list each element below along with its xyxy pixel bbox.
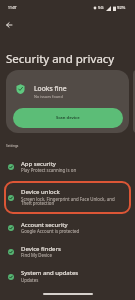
staticText: System and updates (21, 269, 79, 277)
staticText: Account security (21, 221, 68, 229)
button[interactable] (4, 181, 131, 214)
staticText: Find My Device (21, 252, 52, 258)
button[interactable]: Scan device (13, 108, 123, 128)
button[interactable] (133, 70, 135, 133)
button[interactable] (0, 264, 135, 288)
staticText: Security and privacy (6, 51, 115, 67)
button[interactable]: Back (0, 16, 17, 33)
staticText: Play Protect scanning is on (21, 167, 77, 173)
staticText: Looks fine (34, 84, 67, 93)
staticText: No issues found (34, 94, 63, 99)
staticText: Screen lock, Fingerprint and Face Unlock… (21, 196, 115, 202)
button[interactable]: Looks fine (6, 70, 129, 133)
button[interactable] (0, 239, 135, 263)
button[interactable] (0, 215, 135, 239)
staticText: Updates (21, 277, 39, 283)
staticText: App security (21, 160, 56, 168)
staticText: Device unlock (21, 188, 60, 196)
staticText: Settings (6, 144, 19, 148)
staticText: Theft protection (21, 200, 55, 206)
staticText: Google Account is protected (21, 228, 80, 234)
staticText: Device finders (21, 245, 61, 253)
button[interactable] (0, 155, 135, 179)
staticText: 11:07 (8, 5, 17, 9)
staticText: 5G (98, 5, 104, 11)
staticText: Scan device (56, 115, 80, 121)
staticText: 92% (117, 5, 126, 11)
